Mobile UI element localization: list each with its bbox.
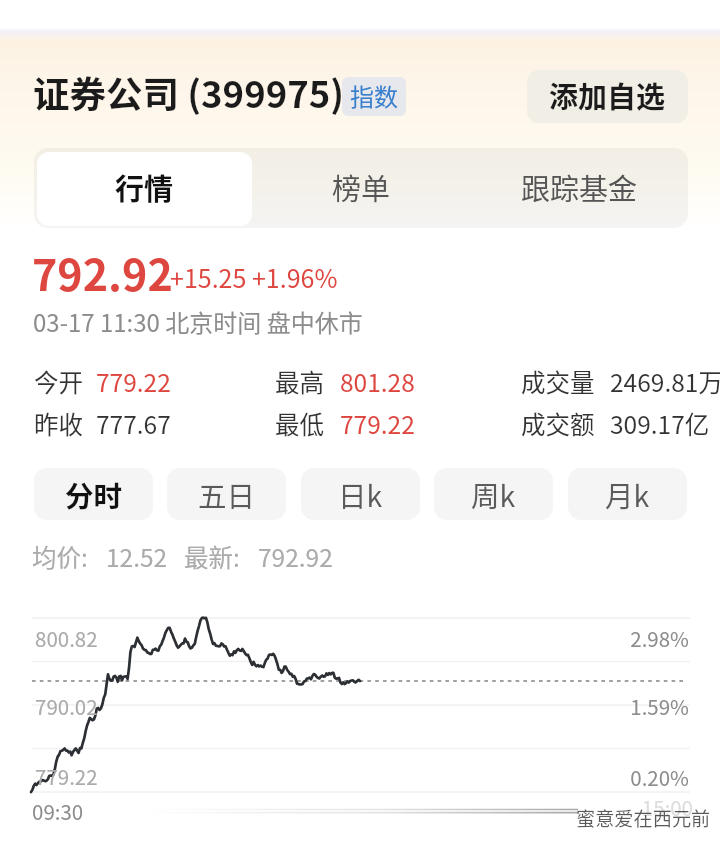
- staticText: 777.67: [96, 406, 171, 441]
- staticText: 1.59%: [630, 691, 689, 721]
- staticText: 指数: [350, 78, 398, 113]
- staticText: 跟踪基金: [521, 166, 638, 208]
- staticText: 均价:: [32, 539, 88, 574]
- staticText: 证券公司 (399975): [33, 66, 345, 119]
- staticText: 09:30: [32, 796, 84, 826]
- staticText: +15.25 +1.96%: [170, 259, 338, 295]
- button[interactable]: 月k: [568, 468, 687, 520]
- staticText: 今开: [34, 364, 83, 399]
- button[interactable]: 分时: [34, 468, 153, 520]
- button[interactable]: 行情: [37, 152, 252, 226]
- staticText: 成交量: [521, 364, 595, 399]
- staticText: 779.22: [340, 406, 415, 441]
- staticText: 12.52: [106, 539, 168, 574]
- button[interactable]: 跟踪基金: [470, 152, 688, 226]
- button[interactable]: 榜单: [252, 152, 470, 226]
- staticText: 800.82: [35, 623, 98, 653]
- button[interactable]: 日k: [301, 468, 420, 520]
- staticText: 榜单: [332, 166, 391, 208]
- staticText: 03-17 11:30 北京时间 盘中休市: [33, 304, 363, 339]
- button[interactable]: 五日: [167, 468, 286, 520]
- staticText: 2.98%: [630, 623, 689, 653]
- staticText: 2469.81万: [610, 364, 720, 399]
- staticText: 790.02: [35, 691, 98, 721]
- staticText: 添加自选: [549, 74, 666, 116]
- staticText: 309.17亿: [610, 406, 710, 441]
- staticText: 成交额: [521, 406, 595, 441]
- staticText: 779.22: [35, 761, 98, 791]
- staticText: 日k: [338, 474, 383, 515]
- staticText: 最低: [275, 406, 324, 441]
- staticText: 792.92: [258, 539, 333, 574]
- staticText: 蜜意爱在西元前: [576, 804, 711, 832]
- staticText: 周k: [471, 474, 516, 515]
- staticText: 分时: [65, 474, 123, 515]
- staticText: 779.22: [96, 364, 171, 399]
- staticText: 五日: [198, 474, 256, 515]
- staticText: 昨收: [34, 406, 83, 441]
- button[interactable]: 添加自选: [527, 70, 688, 123]
- staticText: 最新:: [184, 539, 240, 574]
- staticText: 月k: [605, 474, 650, 515]
- staticText: 行情: [115, 166, 174, 208]
- staticText: 792.92: [32, 241, 173, 303]
- button[interactable]: 周k: [434, 468, 553, 520]
- staticText: 15:00: [641, 792, 693, 822]
- staticText: 最高: [275, 364, 324, 399]
- staticText: 801.28: [340, 364, 415, 399]
- staticText: 0.20%: [630, 762, 689, 792]
